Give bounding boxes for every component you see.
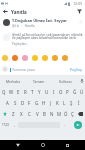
staticText: T.Doğukan Ülmez İzci Seyyar İncelik bbox=[12, 18, 79, 23]
button[interactable]: P bbox=[64, 86, 71, 97]
staticText: N bbox=[50, 111, 54, 117]
staticText: ?123 bbox=[2, 123, 9, 127]
staticText: 12:05 bbox=[73, 1, 83, 6]
button[interactable]: Y bbox=[36, 86, 43, 97]
button[interactable]: Shift bbox=[0, 108, 9, 119]
button[interactable]: Tamam bbox=[26, 75, 52, 86]
button[interactable]: Home bbox=[37, 140, 49, 150]
staticText: B bbox=[43, 111, 46, 117]
button[interactable]: , bbox=[11, 119, 18, 130]
staticText: , bbox=[14, 122, 16, 128]
button[interactable]: I bbox=[50, 86, 57, 97]
button[interactable]: Emoji bbox=[60, 52, 70, 63]
staticText: Ü bbox=[80, 89, 84, 95]
staticText: Merhaba bbox=[6, 79, 20, 83]
staticText: Yanıtla bbox=[11, 9, 27, 15]
button[interactable]: Emoji bbox=[0, 52, 10, 63]
button[interactable]: T bbox=[29, 86, 36, 97]
staticText: D bbox=[21, 100, 25, 106]
button[interactable]: Ü bbox=[78, 86, 85, 97]
staticText: L bbox=[63, 100, 66, 106]
button[interactable]: Paylaş bbox=[68, 66, 84, 73]
button[interactable]: H bbox=[40, 97, 47, 108]
button[interactable]: O bbox=[57, 86, 64, 97]
button[interactable]: E bbox=[15, 86, 22, 97]
staticText: Ö bbox=[64, 111, 68, 117]
button[interactable]: Back bbox=[12, 140, 24, 150]
staticText: . bbox=[64, 122, 66, 128]
staticText: Ğ bbox=[73, 89, 77, 95]
button[interactable]: J bbox=[47, 97, 54, 108]
button[interactable]: Emoji bbox=[20, 52, 30, 63]
button[interactable]: Emoji bbox=[10, 52, 20, 63]
button[interactable]: S bbox=[11, 97, 19, 108]
staticText: E bbox=[17, 89, 20, 95]
button[interactable]: Voice input bbox=[78, 75, 85, 86]
staticText: C bbox=[28, 111, 31, 117]
staticText: X bbox=[20, 111, 23, 117]
staticText: V bbox=[36, 111, 39, 117]
staticText: Paylaş bbox=[70, 67, 82, 72]
button[interactable]: Z bbox=[9, 108, 17, 119]
button[interactable]: W bbox=[8, 86, 15, 97]
staticText: I bbox=[53, 89, 55, 95]
button[interactable]: Emoji bbox=[50, 52, 60, 63]
staticText: J bbox=[50, 100, 52, 106]
staticText: Z bbox=[12, 111, 15, 117]
button[interactable]: Ö bbox=[62, 108, 69, 119]
staticText: Paylaşılan... bbox=[12, 42, 29, 46]
button[interactable]: Backspace bbox=[76, 108, 85, 119]
button[interactable]: C bbox=[25, 108, 33, 119]
button[interactable]: U bbox=[43, 86, 50, 97]
button[interactable]: D bbox=[19, 97, 26, 108]
button[interactable]: Kullanıcı bbox=[52, 75, 78, 86]
button[interactable]: N bbox=[48, 108, 55, 119]
staticText: Yanıtınızı yazın bbox=[12, 67, 36, 72]
button[interactable]: B bbox=[41, 108, 48, 119]
staticText: @t.b · Yanıtla bbox=[12, 24, 35, 28]
button[interactable]: R bbox=[22, 86, 29, 97]
button[interactable]: Drafts bbox=[74, 7, 84, 16]
button[interactable]: Emoji bbox=[40, 52, 50, 63]
staticText: İ bbox=[78, 100, 80, 106]
staticText: Tamam bbox=[33, 79, 45, 83]
button[interactable]: A bbox=[3, 97, 11, 108]
staticText: S bbox=[14, 100, 17, 106]
button[interactable]: Ç bbox=[69, 108, 76, 119]
staticText: Ç bbox=[71, 111, 74, 117]
staticText: F bbox=[28, 100, 31, 106]
button[interactable]: Merhaba bbox=[0, 75, 26, 86]
button[interactable]: Send bbox=[70, 119, 85, 130]
staticText: O bbox=[59, 89, 63, 95]
staticText: M bbox=[57, 111, 61, 117]
button[interactable]: X bbox=[17, 108, 25, 119]
button[interactable]: ?123 bbox=[0, 119, 11, 130]
staticText: A bbox=[6, 100, 9, 106]
button[interactable]: L bbox=[61, 97, 68, 108]
button[interactable]: V bbox=[33, 108, 41, 119]
staticText: G bbox=[35, 100, 39, 106]
button[interactable]: F bbox=[26, 97, 33, 108]
button[interactable]: Recents bbox=[61, 140, 73, 150]
staticText: Ş bbox=[70, 100, 73, 106]
button[interactable]: K bbox=[54, 97, 61, 108]
staticText: U bbox=[45, 89, 49, 95]
button[interactable]: İ bbox=[75, 97, 82, 108]
button[interactable]: Ğ bbox=[71, 86, 78, 97]
staticText: W bbox=[9, 89, 14, 95]
staticText: H bbox=[42, 100, 46, 106]
button[interactable]: G bbox=[33, 97, 40, 108]
staticText: Y bbox=[38, 89, 41, 95]
button[interactable]: Ş bbox=[68, 97, 75, 108]
staticText: P bbox=[66, 89, 69, 95]
button[interactable]: Q bbox=[0, 86, 8, 97]
staticText: Q bbox=[2, 89, 6, 95]
button[interactable]: Emoji bbox=[30, 52, 40, 63]
staticText: K bbox=[56, 100, 59, 106]
button[interactable]: Back bbox=[0, 7, 11, 16]
button[interactable]: M bbox=[55, 108, 62, 119]
staticText: T bbox=[31, 89, 34, 95]
